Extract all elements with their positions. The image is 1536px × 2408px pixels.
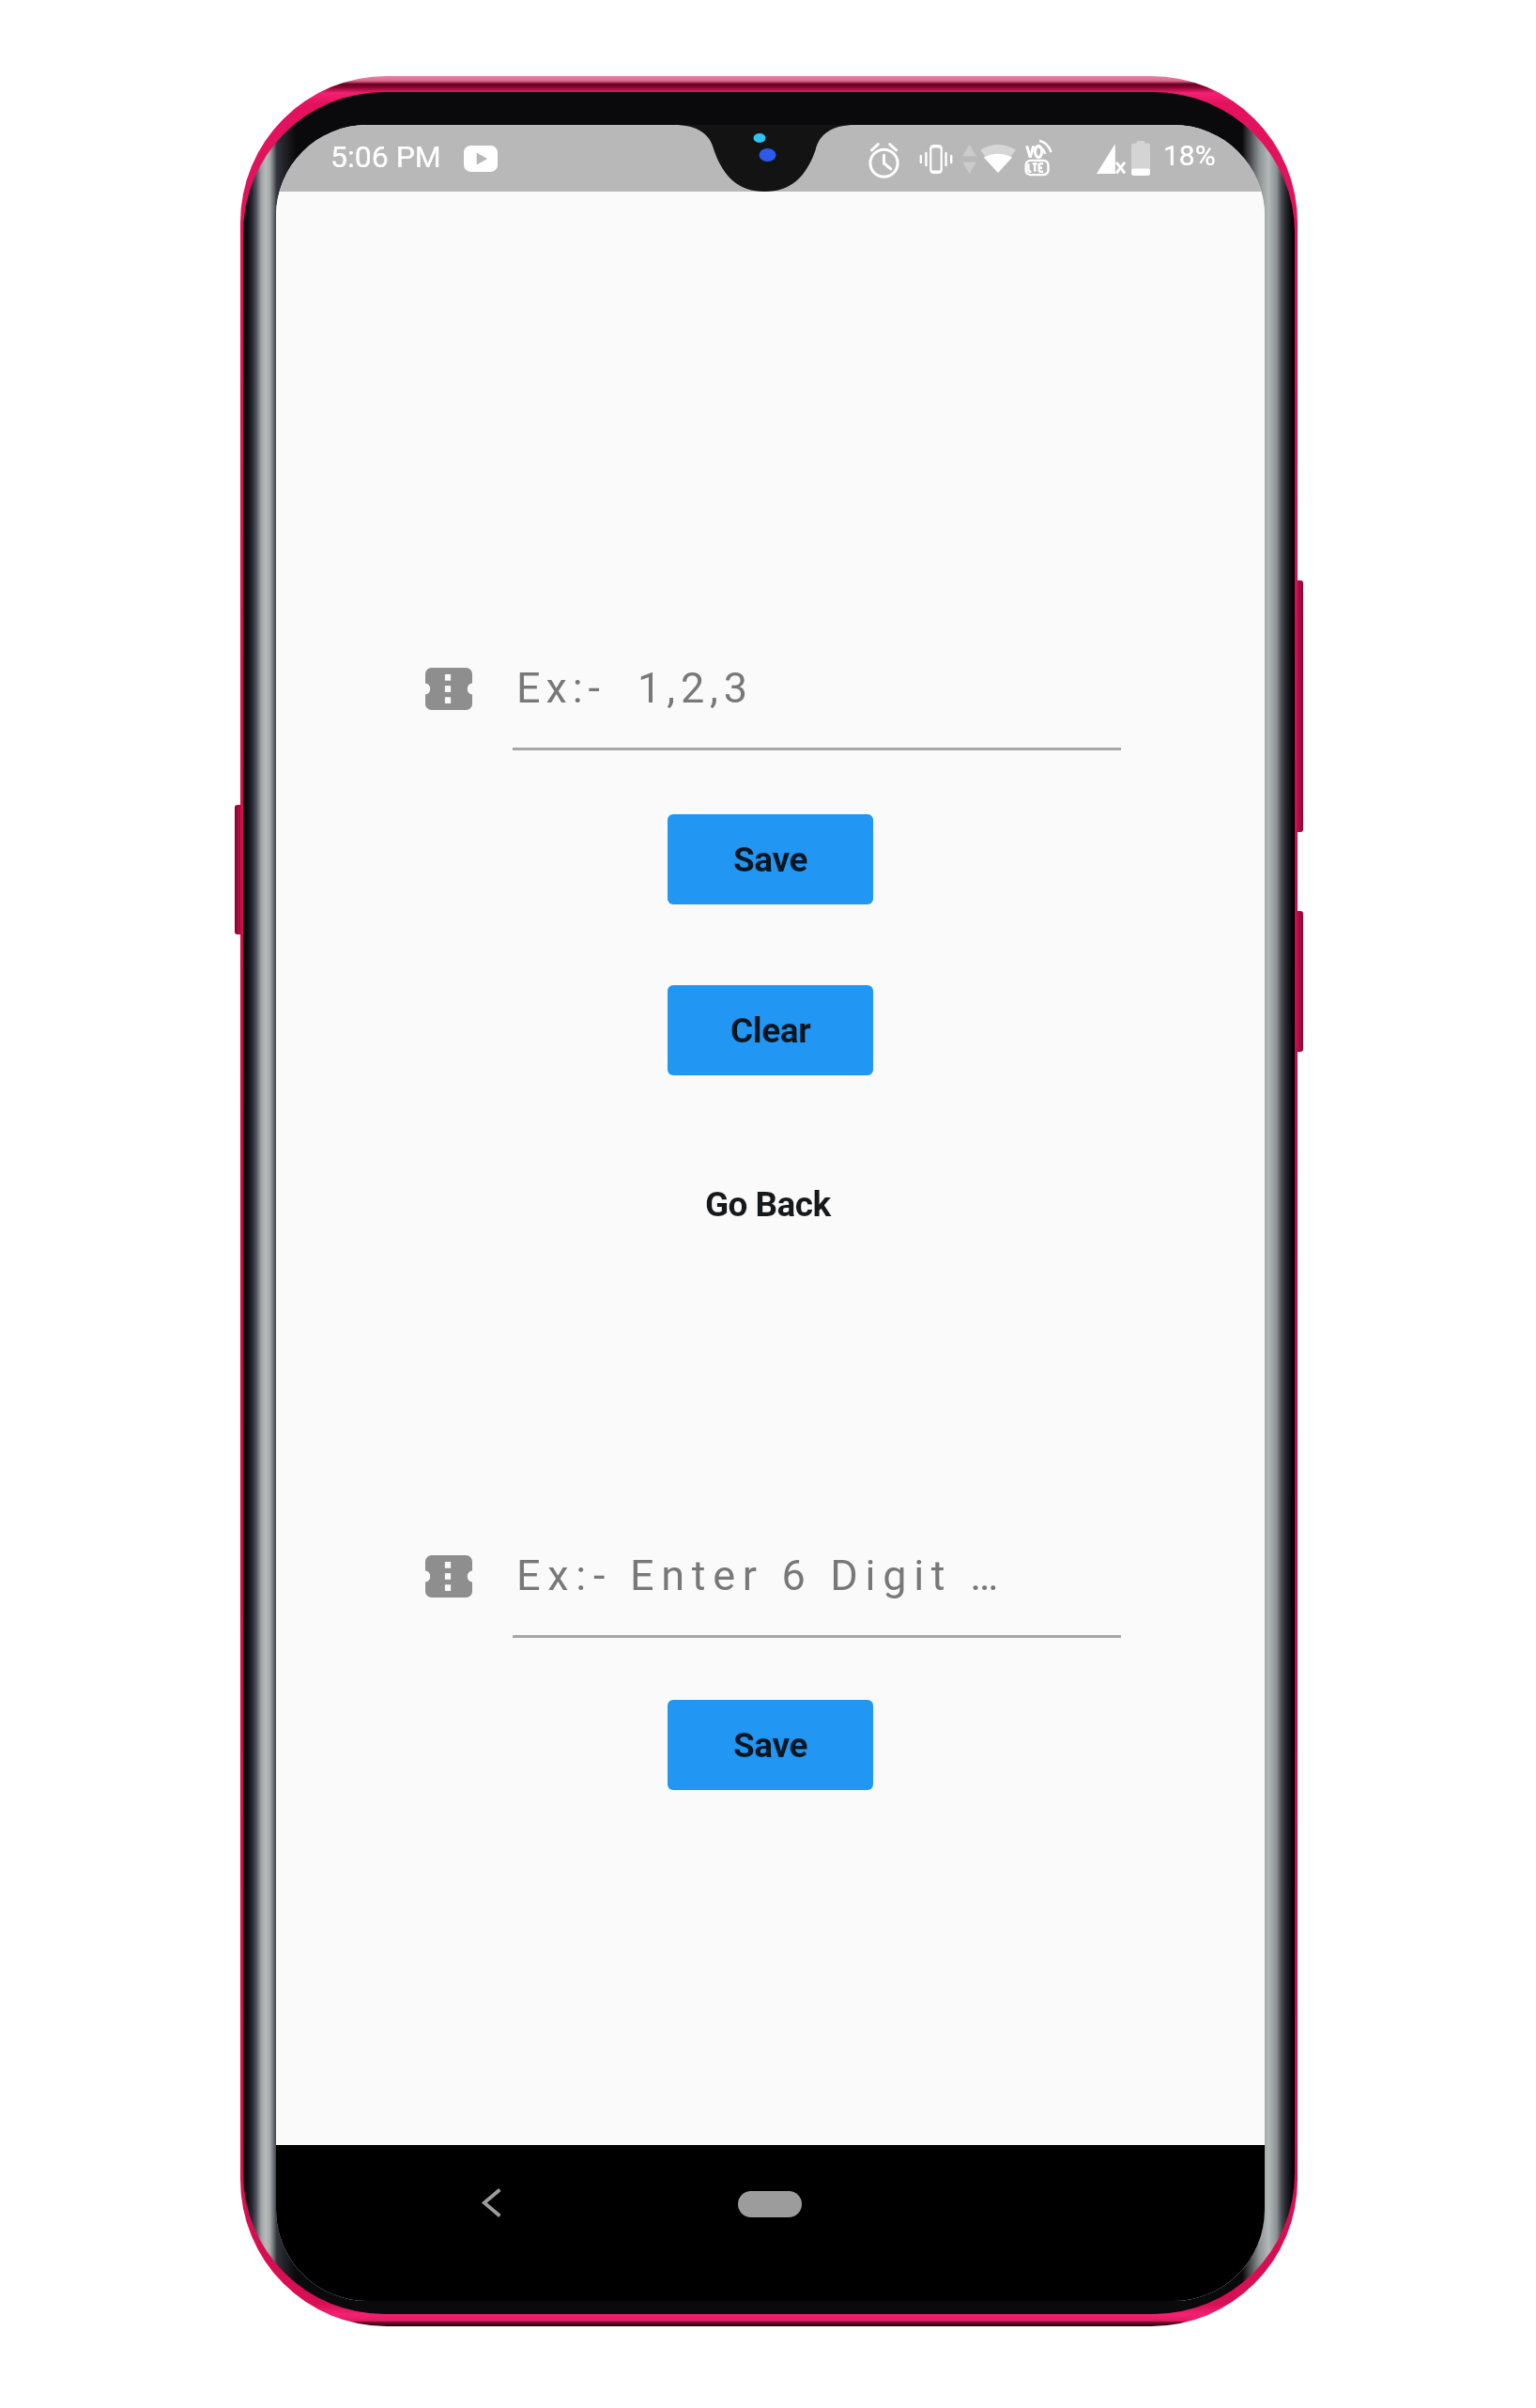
button[interactable]: Home (704, 2175, 836, 2233)
staticText: Go Back (705, 1184, 831, 1225)
staticText: Save (733, 1725, 808, 1766)
button[interactable]: Ex:- Enter 6 Digit … (417, 1544, 1130, 1649)
button[interactable]: Ex:- 1,2,3 (417, 656, 1130, 762)
button[interactable]: Save (668, 814, 873, 904)
button[interactable]: Save (668, 1700, 873, 1790)
button[interactable]: Go Back (677, 1171, 859, 1238)
button[interactable]: Back (448, 2159, 534, 2246)
staticText: Ex:- 1,2,3 (516, 663, 754, 713)
staticText: Save (733, 840, 808, 880)
staticText: Clear (730, 1011, 811, 1051)
button[interactable]: Clear (668, 985, 873, 1075)
staticText: 5:06 PM (330, 139, 441, 175)
staticText: Ex:- Enter 6 Digit … (516, 1551, 1006, 1600)
staticText: 18% (1163, 139, 1216, 172)
